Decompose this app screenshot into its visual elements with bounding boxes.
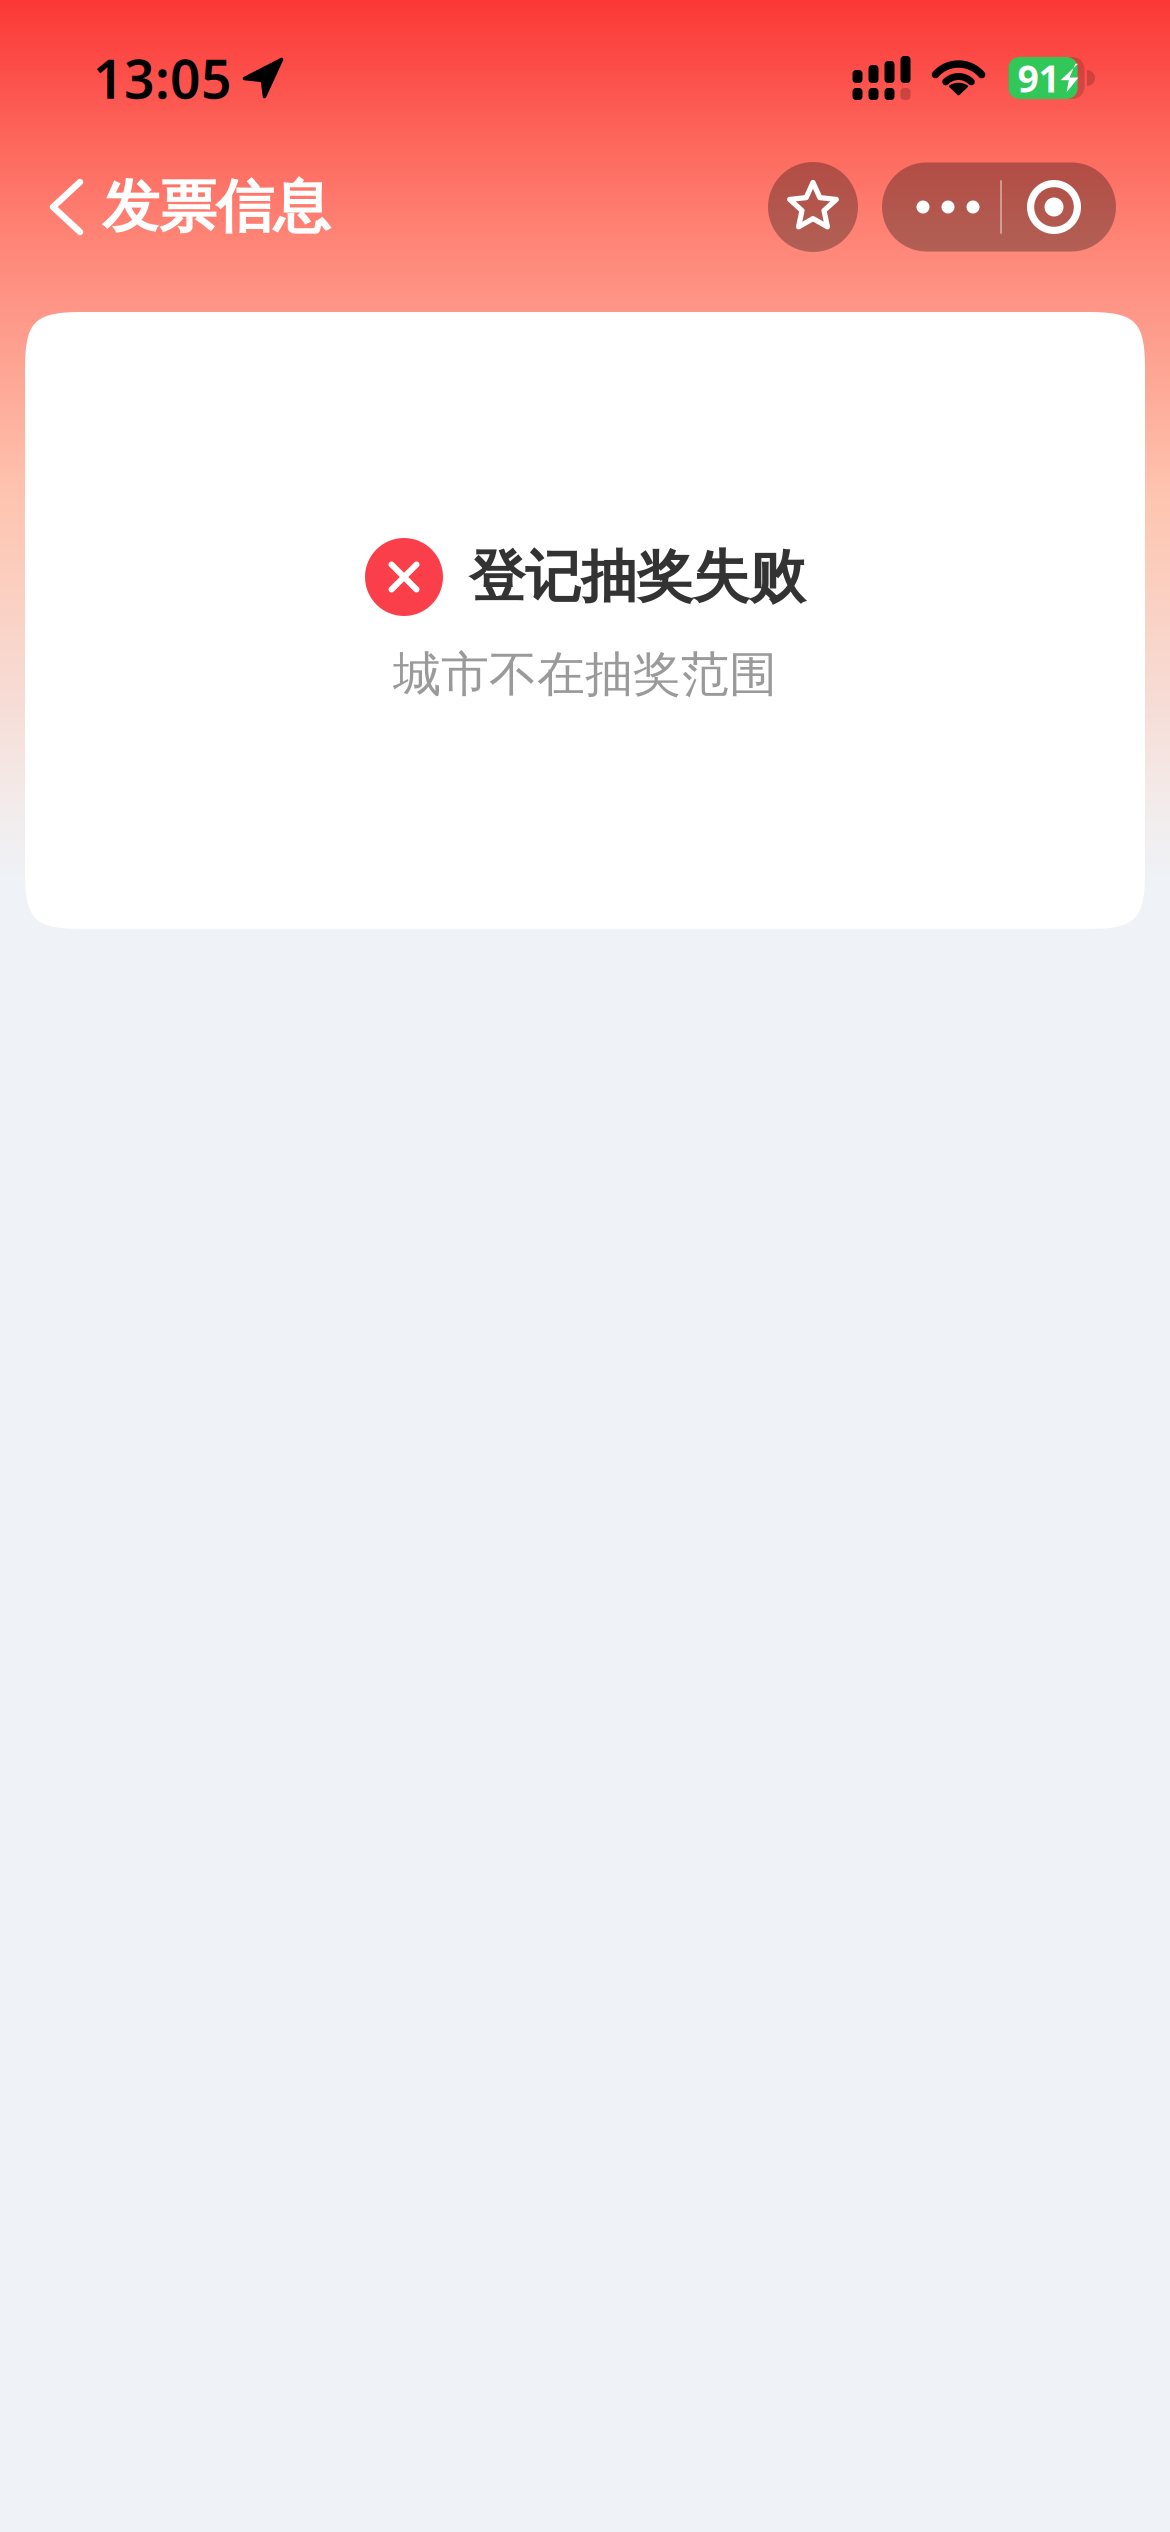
button[interactable]: 返回 发票信息 [0, 148, 356, 266]
button[interactable]: 更多 [882, 162, 1000, 251]
button[interactable]: 关闭小程序 [1002, 162, 1116, 251]
staticText: 发票信息 [102, 172, 330, 242]
staticText: 城市不在抽奖范围 [393, 645, 777, 704]
staticText: 91 [1017, 53, 1059, 103]
staticText: 13:05 [93, 43, 232, 113]
staticText: 登记抽奖失败 [469, 543, 805, 611]
button[interactable]: 收藏 [768, 162, 858, 252]
